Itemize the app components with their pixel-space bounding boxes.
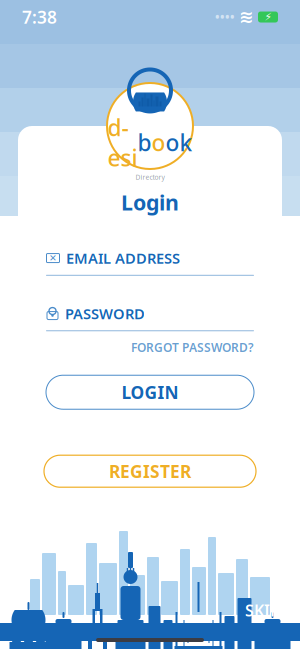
staticText: LOGIN <box>121 381 178 404</box>
button[interactable]: SKIP <box>239 597 286 624</box>
staticText: EMAIL ADDRESS <box>66 248 180 268</box>
staticText: •••• <box>215 9 235 25</box>
staticText: FORGOT PASSWORD? <box>131 339 254 355</box>
staticText: 7:38 <box>22 5 57 28</box>
staticText: Directory <box>135 173 164 182</box>
staticText: REGISTER <box>109 460 191 483</box>
button[interactable]: LOGIN <box>46 375 254 409</box>
staticText: Login <box>121 188 179 216</box>
staticText: b <box>137 127 151 158</box>
staticText: desi <box>107 112 137 173</box>
staticText: PASSWORD <box>65 304 145 323</box>
button[interactable]: REGISTER <box>44 455 256 487</box>
staticText: ⚡︎ <box>264 11 271 23</box>
button[interactable]: FORGOT PASSWORD? <box>46 331 254 357</box>
staticText: o <box>151 127 165 158</box>
staticText: ✕ <box>49 253 57 263</box>
staticText: ok <box>165 127 192 158</box>
staticText: SKIP <box>245 600 280 621</box>
staticText: ≋ <box>239 7 254 27</box>
